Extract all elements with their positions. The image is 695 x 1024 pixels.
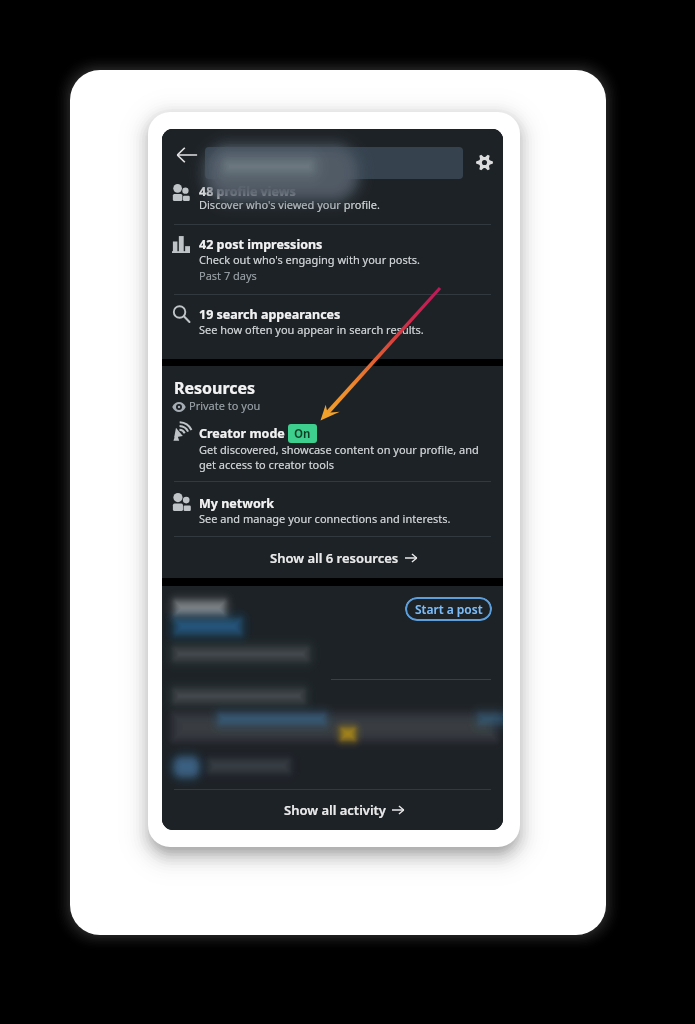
staticText: 19 search appearances — [199, 306, 341, 323]
staticText: My network — [199, 495, 275, 512]
button[interactable]: Creator mode — [162, 422, 503, 481]
button[interactable]: 19 search appearances — [162, 295, 503, 359]
staticText: See how often you appear in search resul… — [199, 322, 424, 337]
button[interactable]: 42 post impressions — [162, 225, 503, 294]
button[interactable]: Settings — [471, 149, 497, 175]
button[interactable] — [205, 147, 463, 179]
button[interactable]: My network — [162, 482, 503, 536]
staticText: See and manage your connections and inte… — [199, 511, 451, 526]
button[interactable]: Show all activity — [162, 790, 503, 830]
staticText: 42 post impressions — [199, 236, 323, 253]
staticText: Check out who's engaging with your posts… — [199, 252, 420, 267]
staticText: Creator mode — [199, 425, 285, 442]
staticText: Private to you — [189, 398, 261, 413]
staticText: Discover who's viewed your profile. — [199, 197, 381, 212]
staticText: get access to creator tools — [199, 457, 335, 472]
staticText: Show all 6 resources — [270, 549, 399, 567]
button[interactable]: Show all 6 resources — [162, 537, 503, 578]
button[interactable]: Back — [170, 138, 204, 172]
button[interactable]: 48 profile views — [162, 129, 503, 224]
staticText: Start a post — [415, 601, 483, 617]
button[interactable]: Start a post — [405, 597, 492, 621]
staticText: 48 profile views — [199, 183, 296, 200]
staticText: On — [294, 426, 311, 442]
staticText: Get discovered, showcase content on your… — [199, 442, 479, 457]
staticText: Past 7 days — [199, 268, 257, 283]
staticText: Resources — [174, 377, 256, 399]
staticText: Show all activity — [284, 801, 386, 819]
